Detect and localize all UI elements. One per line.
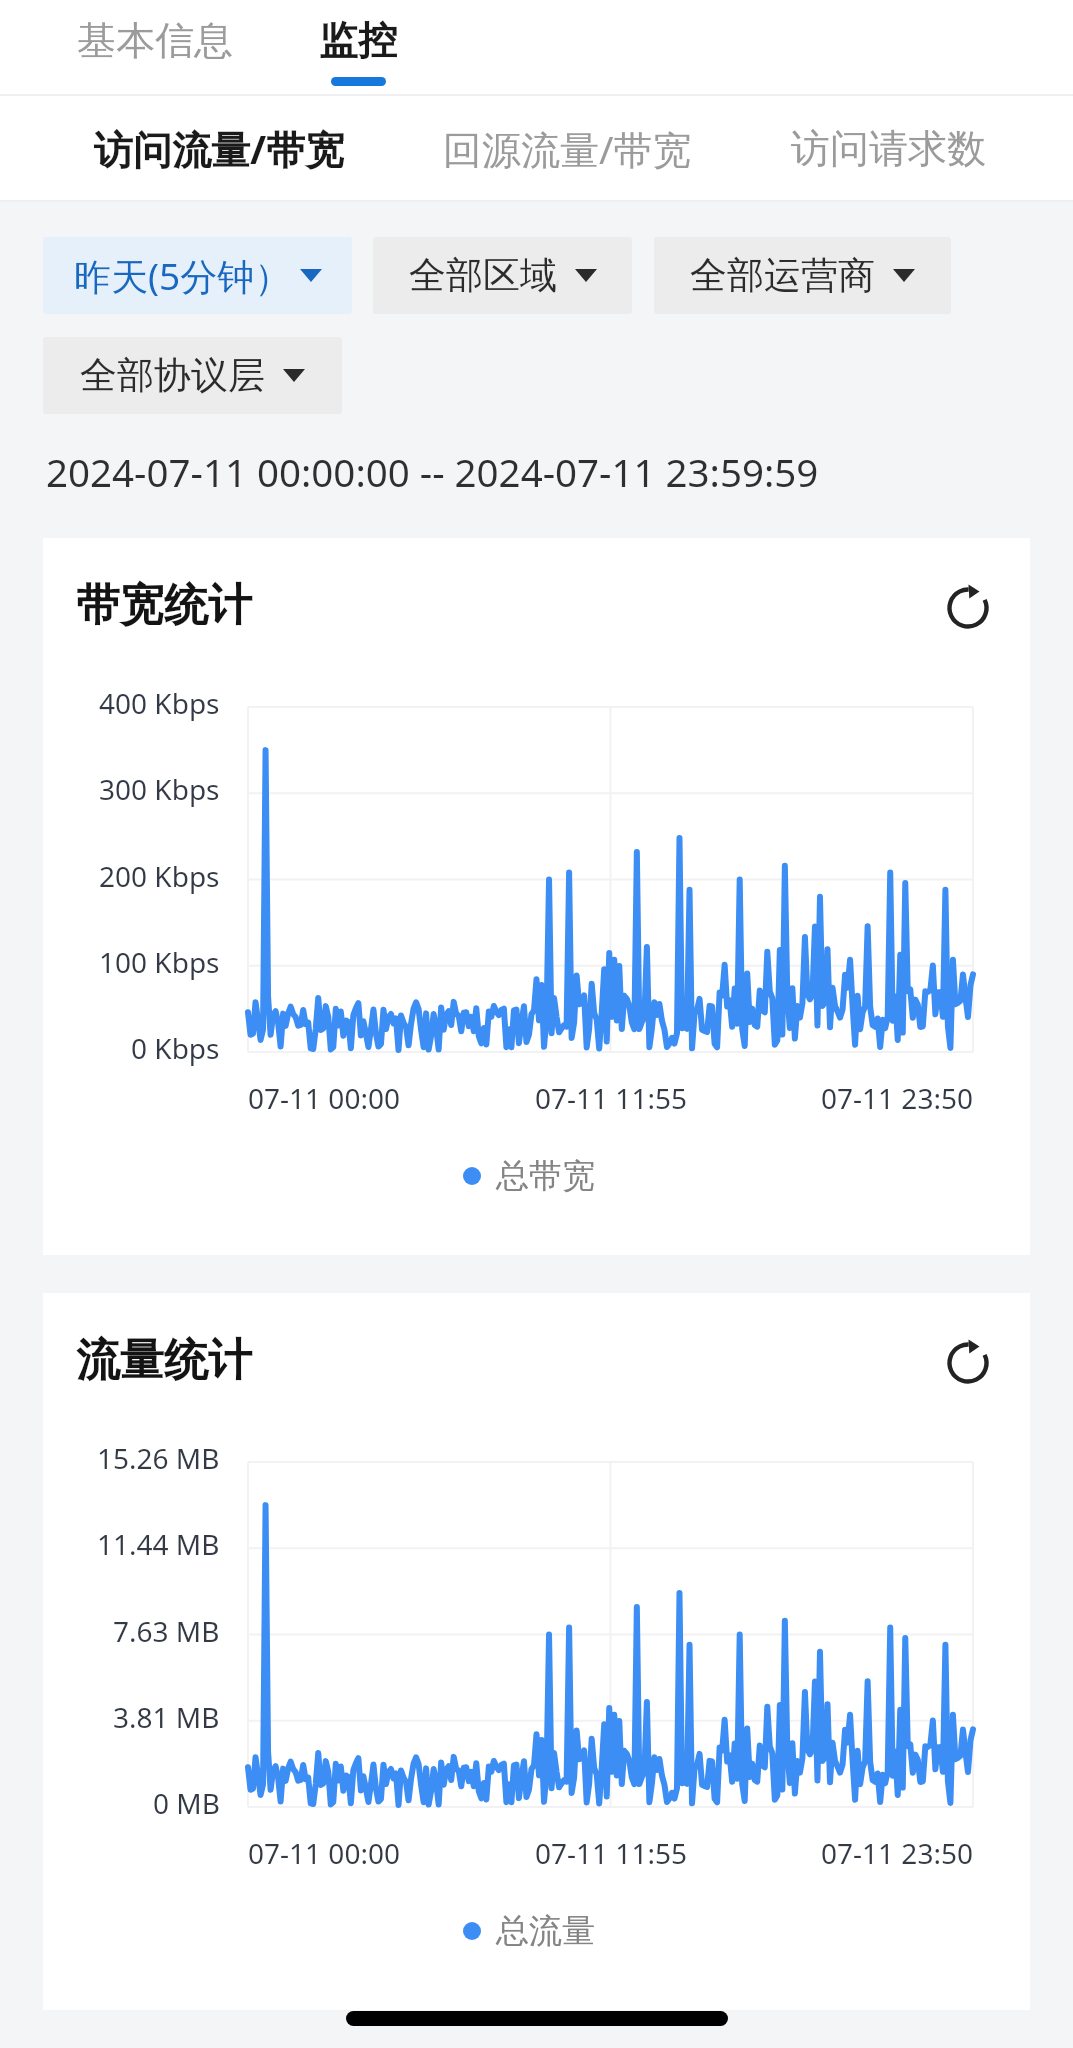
- button[interactable]: Refresh: [940, 578, 996, 634]
- staticText: 总带宽: [496, 1155, 595, 1197]
- button[interactable]: 全部运营商: [654, 237, 951, 314]
- staticText: 07-11 11:55: [535, 1079, 687, 1117]
- button[interactable]: Refresh: [940, 1333, 996, 1389]
- staticText: 0 Kbps: [131, 1029, 220, 1067]
- button[interactable]: 监控: [291, 0, 425, 96]
- staticText: 3.81 MB: [113, 1698, 220, 1736]
- staticText: 07-11 11:55: [535, 1834, 687, 1872]
- staticText: 监控: [319, 16, 397, 65]
- button[interactable]: 基本信息: [62, 0, 247, 96]
- staticText: 300 Kbps: [99, 770, 220, 808]
- staticText: 7.63 MB: [113, 1612, 220, 1650]
- button[interactable]: 全部区域: [373, 237, 632, 314]
- button[interactable]: 回源流量/带宽: [424, 96, 711, 199]
- button[interactable]: 全部协议层: [43, 337, 342, 414]
- button[interactable]: 昨天(5分钟）: [43, 237, 352, 314]
- staticText: 带宽统计: [76, 578, 252, 633]
- staticText: 400 Kbps: [99, 684, 220, 722]
- staticText: 15.26 MB: [97, 1439, 220, 1477]
- staticText: 200 Kbps: [99, 857, 220, 895]
- staticText: 2024-07-11 00:00:00 -- 2024-07-11 23:59:…: [46, 446, 819, 498]
- staticText: 全部区域: [409, 252, 557, 299]
- staticText: 访问请求数: [791, 124, 986, 173]
- staticText: 07-11 23:50: [821, 1834, 973, 1872]
- staticText: 访问流量/带宽: [94, 122, 345, 175]
- staticText: 基本信息: [77, 16, 233, 65]
- staticText: 07-11 00:00: [248, 1079, 400, 1117]
- staticText: 总流量: [496, 1910, 595, 1952]
- staticText: 回源流量/带宽: [443, 122, 692, 175]
- staticText: 07-11 00:00: [248, 1834, 400, 1872]
- staticText: 全部协议层: [80, 352, 265, 399]
- staticText: 全部运营商: [690, 252, 875, 299]
- staticText: 07-11 23:50: [821, 1079, 973, 1117]
- staticText: 11.44 MB: [97, 1525, 220, 1563]
- staticText: 昨天(5分钟）: [74, 250, 292, 301]
- button[interactable]: 访问请求数: [778, 96, 998, 199]
- button[interactable]: 访问流量/带宽: [79, 96, 360, 199]
- staticText: 100 Kbps: [99, 943, 220, 981]
- staticText: 流量统计: [76, 1333, 252, 1388]
- staticText: 0 MB: [153, 1784, 220, 1822]
